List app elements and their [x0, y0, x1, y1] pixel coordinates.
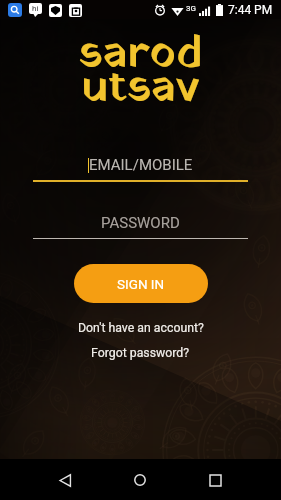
- button[interactable]: Don't have an account?: [0, 318, 281, 338]
- button[interactable]: Recent apps: [198, 463, 232, 497]
- staticText: sarod: [79, 21, 203, 88]
- staticText: Forgot password?: [91, 346, 190, 360]
- button[interactable]: Back: [48, 463, 82, 497]
- staticText: SIGN IN: [117, 276, 165, 292]
- staticText: Don't have an account?: [78, 321, 204, 335]
- staticText: EMAIL/MOBILE: [89, 156, 193, 174]
- staticText: 3G: [186, 4, 196, 13]
- button[interactable]: Forgot password?: [0, 343, 281, 363]
- staticText: PASSWORD: [101, 214, 180, 232]
- button[interactable]: Home: [123, 463, 157, 497]
- button[interactable]: SIGN IN: [74, 264, 208, 303]
- staticText: 7:44 PM: [228, 3, 273, 17]
- staticText: hi: [32, 4, 39, 13]
- staticText: utsav: [82, 55, 200, 122]
